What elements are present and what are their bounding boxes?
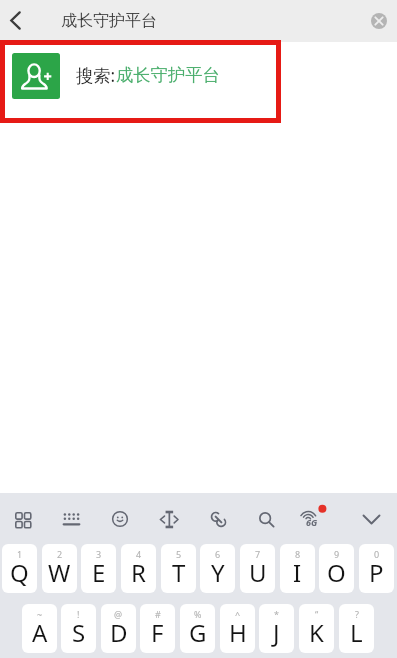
button[interactable]: @: [101, 604, 136, 653]
button[interactable]: 0: [359, 544, 394, 593]
staticText: 0: [374, 548, 380, 560]
button[interactable]: Network: [295, 502, 329, 536]
button[interactable]: “: [299, 604, 334, 653]
button[interactable]: Hide keyboard: [354, 502, 388, 536]
staticText: #: [155, 608, 161, 620]
staticText: ?: [355, 608, 359, 620]
staticText: !: [77, 608, 80, 620]
button[interactable]: 3: [81, 544, 116, 593]
button[interactable]: 8: [280, 544, 315, 593]
staticText: H: [229, 616, 247, 649]
staticText: Y: [211, 556, 225, 589]
staticText: 6: [215, 548, 221, 560]
staticText: 3: [96, 548, 102, 560]
button[interactable]: %: [180, 604, 215, 653]
button[interactable]: *: [259, 604, 294, 653]
staticText: @: [114, 608, 123, 620]
button[interactable]: !: [61, 604, 96, 653]
staticText: R: [131, 556, 146, 589]
button[interactable]: 1: [2, 544, 37, 593]
staticText: 8: [295, 548, 301, 560]
staticText: 9: [334, 548, 340, 560]
staticText: A: [32, 616, 48, 649]
button[interactable]: ~: [22, 604, 57, 653]
staticText: T: [172, 556, 186, 589]
button[interactable]: 2: [42, 544, 77, 593]
staticText: L: [350, 616, 363, 649]
staticText: O: [327, 556, 346, 589]
button[interactable]: Apps: [5, 502, 39, 536]
staticText: “: [315, 608, 319, 620]
button[interactable]: ?: [339, 604, 374, 653]
staticText: 搜索:: [76, 64, 116, 88]
staticText: ~: [37, 608, 43, 620]
button[interactable]: ^: [220, 604, 255, 653]
staticText: 5: [176, 548, 182, 560]
button[interactable]: Attachment: [201, 502, 235, 536]
staticText: 4: [136, 548, 142, 560]
button[interactable]: 5: [161, 544, 196, 593]
staticText: 2: [57, 548, 63, 560]
staticText: P: [369, 556, 384, 589]
button[interactable]: Text cursor: [152, 502, 186, 536]
staticText: D: [110, 616, 128, 649]
staticText: W: [48, 556, 71, 589]
button[interactable]: Emoji: [103, 502, 137, 536]
staticText: G: [189, 616, 207, 649]
button[interactable]: 搜索:: [5, 45, 276, 118]
staticText: U: [249, 556, 267, 589]
staticText: F: [151, 616, 164, 649]
button[interactable]: #: [140, 604, 175, 653]
staticText: 1: [17, 548, 23, 560]
staticText: E: [92, 556, 106, 589]
button[interactable]: Clear: [363, 5, 395, 37]
staticText: 6G: [306, 516, 318, 528]
staticText: K: [309, 616, 324, 649]
staticText: S: [72, 616, 86, 649]
staticText: *: [274, 608, 279, 620]
button[interactable]: 6: [200, 544, 235, 593]
staticText: Q: [10, 556, 29, 589]
staticText: %: [194, 608, 202, 620]
staticText: 7: [255, 548, 261, 560]
button[interactable]: Keyboard: [54, 502, 88, 536]
staticText: J: [273, 616, 280, 649]
button[interactable]: Search: [249, 502, 283, 536]
button[interactable]: Back: [0, 0, 36, 42]
button[interactable]: 4: [121, 544, 156, 593]
button[interactable]: 7: [240, 544, 275, 593]
staticText: ^: [235, 608, 241, 620]
staticText: I: [293, 556, 302, 589]
button[interactable]: 9: [319, 544, 354, 593]
staticText: 成长守护平台: [116, 64, 220, 86]
staticText: 成长守护平台: [61, 11, 157, 31]
